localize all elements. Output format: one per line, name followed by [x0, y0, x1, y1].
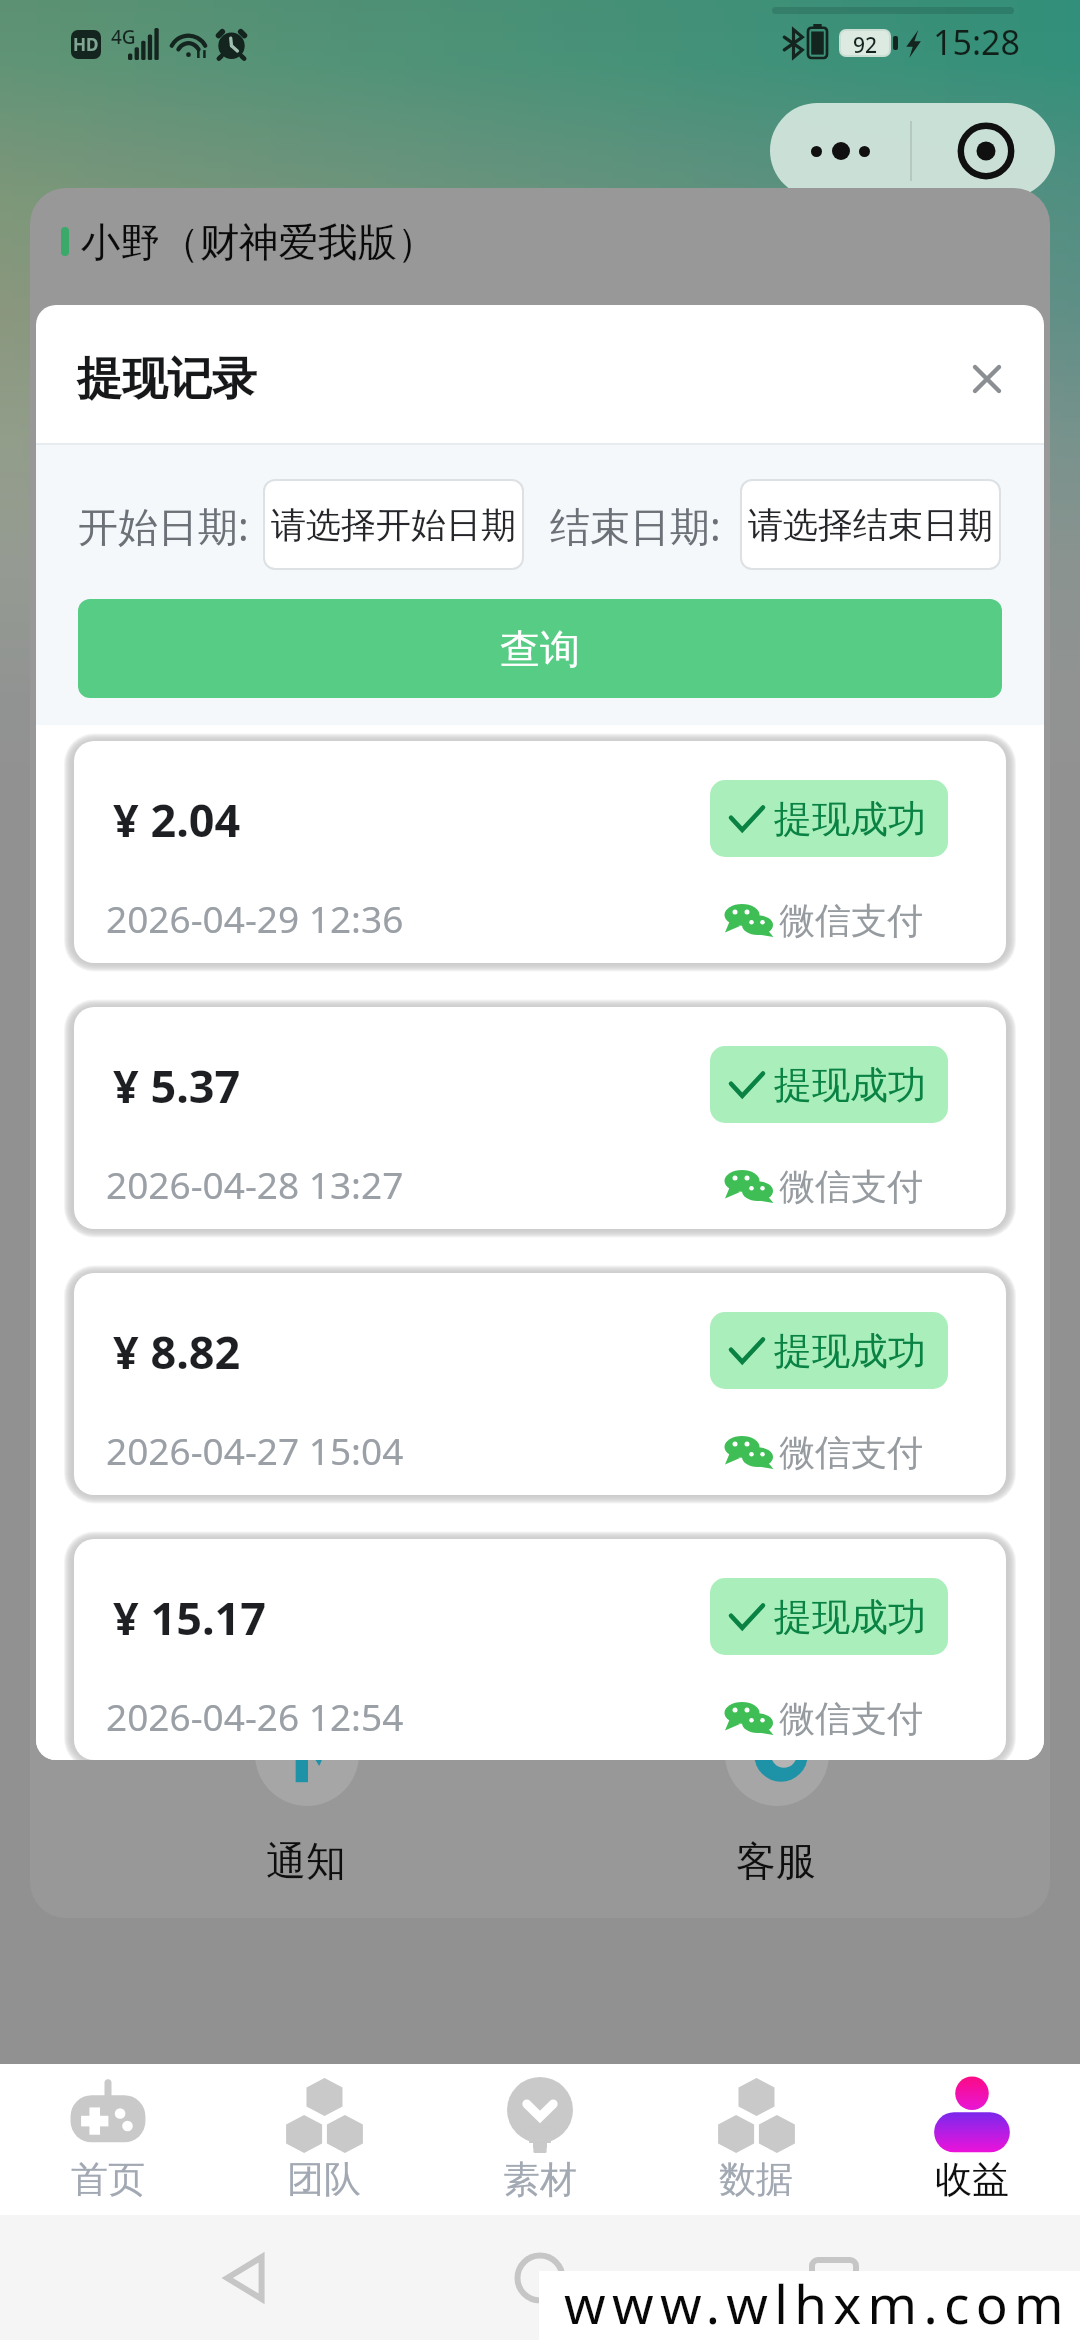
button[interactable]: ¥ 2.04 — [74, 741, 1006, 963]
button[interactable]: 请选择结束日期 — [742, 481, 999, 568]
staticText: 查询 — [500, 624, 580, 674]
button[interactable]: 素材 — [432, 2064, 648, 2215]
staticText: www.wlhxm.com — [564, 2267, 1070, 2336]
button[interactable]: 请选择开始日期 — [265, 481, 522, 568]
staticText: 微信支付 — [779, 1696, 923, 1741]
staticText: 首页 — [71, 2156, 145, 2203]
button[interactable]: 提现成功 — [730, 780, 926, 857]
button[interactable]: 提现成功 — [730, 1312, 926, 1389]
staticText: 2026-04-29 12:36 — [106, 893, 404, 943]
staticText: 2026-04-28 13:27 — [106, 1159, 404, 1209]
button[interactable]: 数据 — [648, 2064, 864, 2215]
button[interactable]: 查询 — [78, 599, 1002, 698]
staticText: 通知 — [266, 1836, 346, 1886]
staticText: 客服 — [736, 1836, 816, 1886]
button[interactable]: Back — [198, 2230, 294, 2326]
staticText: 团队 — [287, 2156, 361, 2203]
staticText: 小野（财神爱我版） — [81, 218, 437, 268]
staticText: 15:28 — [933, 19, 1020, 65]
button[interactable]: ¥ 8.82 — [74, 1273, 1006, 1495]
button[interactable]: 提现成功 — [730, 1578, 926, 1655]
staticText: ¥ 2.04 — [113, 789, 241, 850]
button[interactable]: Close — [951, 343, 1023, 415]
staticText: 4G — [111, 24, 136, 50]
button[interactable]: More — [770, 103, 911, 198]
button[interactable]: 提现成功 — [730, 1046, 926, 1123]
button[interactable]: 收益 — [864, 2064, 1080, 2215]
staticText: 提现成功 — [774, 795, 926, 843]
staticText: 提现成功 — [774, 1327, 926, 1375]
staticText: ¥ 8.82 — [113, 1321, 241, 1382]
staticText: 2026-04-27 15:04 — [106, 1425, 404, 1475]
staticText: 2026-04-26 12:54 — [106, 1691, 404, 1741]
staticText: ¥ 5.37 — [113, 1055, 241, 1116]
button[interactable]: Home — [492, 2230, 588, 2326]
button[interactable]: 首页 — [0, 2064, 216, 2215]
button[interactable]: Close mini program — [913, 103, 1055, 198]
staticText: 微信支付 — [779, 1164, 923, 1209]
button[interactable]: 团队 — [216, 2064, 432, 2215]
staticText: 收益 — [935, 2156, 1009, 2203]
staticText: 开始日期: — [78, 498, 249, 553]
staticText: 素材 — [503, 2156, 577, 2203]
staticText: ¥ 15.17 — [113, 1587, 267, 1648]
staticText: 提现成功 — [774, 1061, 926, 1109]
staticText: 微信支付 — [779, 1430, 923, 1475]
staticText: 提现成功 — [774, 1593, 926, 1641]
staticText: 提现记录 — [77, 351, 257, 408]
button[interactable]: ¥ 15.17 — [74, 1539, 1006, 1760]
staticText: 微信支付 — [779, 898, 923, 943]
staticText: 结束日期: — [550, 498, 721, 553]
button[interactable]: Recents — [786, 2230, 882, 2326]
staticText: HD — [73, 33, 99, 56]
staticText: 数据 — [719, 2156, 793, 2203]
staticText: 请选择结束日期 — [748, 503, 993, 547]
staticText: 请选择开始日期 — [271, 503, 516, 547]
staticText: 92 — [853, 31, 878, 55]
button[interactable]: ¥ 5.37 — [74, 1007, 1006, 1229]
